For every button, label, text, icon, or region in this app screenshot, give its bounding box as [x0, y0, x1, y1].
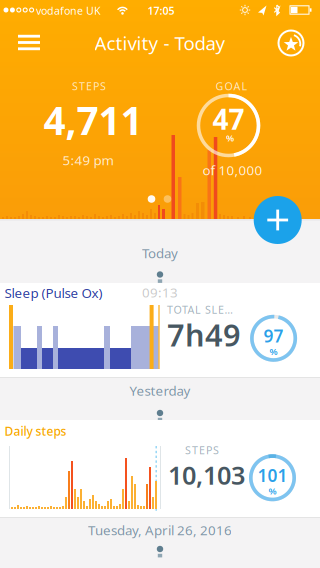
- staticText: Daily steps: [4, 423, 66, 439]
- staticText: 5:49 pm: [62, 151, 113, 169]
- button[interactable]: Menu: [7, 20, 51, 64]
- button[interactable]: Daily steps: [0, 420, 320, 518]
- button[interactable]: Badges: [269, 21, 313, 65]
- button[interactable]: Add: [254, 196, 302, 244]
- staticText: STEPS: [72, 79, 106, 93]
- staticText: Sleep (Pulse Ox): [4, 284, 102, 302]
- staticText: vodafone UK: [36, 3, 101, 18]
- staticText: 7h49: [167, 314, 241, 355]
- staticText: %: [270, 345, 278, 357]
- staticText: 09:13: [142, 283, 178, 301]
- staticText: Tuesday, April 26, 2016: [88, 521, 232, 539]
- staticText: GOAL: [215, 79, 247, 93]
- staticText: 10,103: [168, 458, 245, 492]
- button[interactable]: Sleep (Pulse Ox): [0, 283, 320, 378]
- staticText: Activity - Today: [94, 31, 225, 55]
- staticText: TOTAL SLE…: [167, 302, 232, 317]
- staticText: 47: [212, 100, 244, 138]
- staticText: 4,711: [43, 94, 142, 146]
- staticText: 17:05: [147, 3, 174, 18]
- staticText: of 10,000: [202, 161, 262, 179]
- staticText: %: [226, 132, 234, 144]
- staticText: %: [268, 485, 276, 497]
- staticText: 97: [264, 324, 284, 347]
- staticText: 101: [257, 464, 287, 487]
- staticText: STEPS: [185, 443, 219, 457]
- staticText: Today: [142, 244, 178, 262]
- staticText: Yesterday: [129, 382, 190, 399]
